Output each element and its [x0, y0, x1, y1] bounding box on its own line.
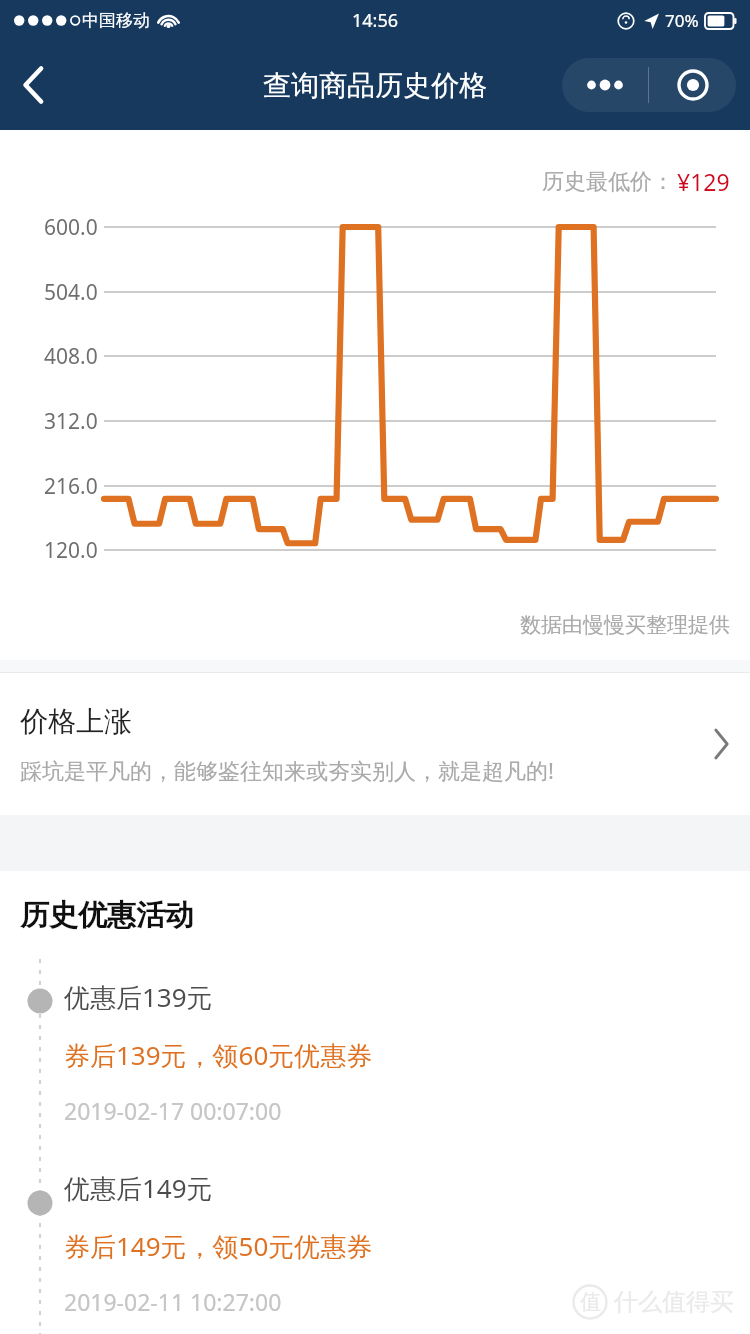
button[interactable]: More: [562, 58, 648, 112]
staticText: 312.0: [44, 407, 98, 436]
staticText: 120.0: [44, 536, 98, 565]
button[interactable]: 价格上涨: [0, 673, 750, 815]
staticText: 2019-02-11 10:27:00: [64, 1286, 282, 1317]
staticText: 504.0: [44, 278, 98, 307]
staticText: 408.0: [44, 342, 98, 371]
staticText: 600.0: [44, 213, 98, 242]
staticText: 价格上涨: [20, 704, 132, 739]
staticText: 历史最低价：: [542, 168, 674, 196]
staticText: 优惠后149元: [64, 1170, 213, 1206]
staticText: 查询商品历史价格: [263, 68, 487, 103]
button[interactable]: 优惠后149元: [64, 1170, 750, 1317]
staticText: 数据由慢慢买整理提供: [520, 612, 730, 638]
staticText: 优惠后139元: [64, 979, 213, 1015]
button[interactable]: Close mini program: [649, 58, 736, 112]
staticText: 值: [580, 1289, 601, 1315]
staticText: 中国移动: [82, 10, 150, 31]
staticText: 券后149元，领50元优惠券: [64, 1228, 373, 1264]
button[interactable]: 优惠后139元: [64, 979, 750, 1126]
staticText: 14:56: [352, 8, 399, 33]
staticText: 70%: [665, 9, 699, 32]
staticText: 什么值得买: [614, 1287, 734, 1317]
staticText: 历史优惠活动: [20, 897, 194, 934]
staticText: 券后139元，领60元优惠券: [64, 1037, 373, 1073]
staticText: ¥129: [677, 166, 730, 197]
staticText: 踩坑是平凡的，能够鉴往知来或夯实别人，就是超凡的!: [20, 755, 554, 785]
staticText: 2019-02-17 00:07:00: [64, 1095, 282, 1126]
button[interactable]: Back: [0, 48, 66, 122]
staticText: 216.0: [44, 472, 98, 501]
